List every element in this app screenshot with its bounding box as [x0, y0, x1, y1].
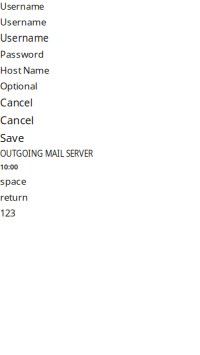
staticText: Host Name: [0, 64, 49, 76]
staticText: 123: [0, 206, 15, 219]
staticText: Save: [0, 130, 24, 145]
staticText: return: [0, 190, 28, 203]
staticText: space: [0, 175, 26, 187]
staticText: Username: [0, 15, 46, 28]
staticText: Username: [0, 31, 49, 45]
staticText: OUTGOING MAIL SERVER: [0, 148, 93, 159]
staticText: 10:00: [0, 162, 18, 172]
staticText: Cancel: [0, 95, 33, 110]
staticText: Cancel: [0, 112, 34, 127]
staticText: Username: [0, 0, 44, 12]
staticText: Password: [0, 48, 44, 61]
staticText: Optional: [0, 79, 37, 92]
